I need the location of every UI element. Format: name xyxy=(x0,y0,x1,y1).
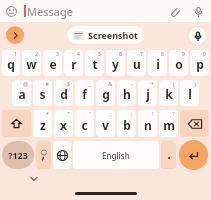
button[interactable]: Backspace xyxy=(180,110,209,137)
button[interactable]: Hide keyboard xyxy=(28,173,40,185)
staticText: 4 xyxy=(77,51,80,58)
staticText: z xyxy=(40,117,46,133)
button[interactable]: Voice input xyxy=(191,4,206,19)
button[interactable]: Period xyxy=(161,141,176,169)
button[interactable]: Show toolbar xyxy=(6,26,24,44)
button[interactable]: # xyxy=(33,80,52,106)
button[interactable]: " xyxy=(54,110,73,137)
staticText: ) xyxy=(194,81,196,88)
staticText: p xyxy=(196,56,204,72)
staticText: ! xyxy=(152,111,154,118)
button[interactable]: 0 xyxy=(190,50,209,76)
staticText: 2 xyxy=(35,51,38,58)
staticText: 7 xyxy=(140,51,143,58)
button[interactable]: English xyxy=(73,141,159,169)
button[interactable]: - xyxy=(117,80,136,106)
button[interactable]: ?123 xyxy=(2,141,34,169)
staticText: u xyxy=(133,56,141,72)
button[interactable]: 5 xyxy=(85,50,104,76)
staticText: @ xyxy=(23,81,28,88)
staticText: 0 xyxy=(203,51,206,58)
staticText: f xyxy=(82,86,87,102)
staticText: l xyxy=(188,86,192,102)
staticText: 5 xyxy=(98,51,101,58)
staticText: 9 xyxy=(182,51,185,58)
staticText: Message xyxy=(27,4,73,19)
button[interactable]: 1 xyxy=(2,50,20,76)
staticText: a xyxy=(18,86,26,102)
staticText: & xyxy=(108,81,112,88)
staticText: t xyxy=(92,56,98,72)
staticText: : xyxy=(110,111,112,118)
button[interactable]: Shift xyxy=(2,110,31,137)
button[interactable]: ; xyxy=(117,110,136,137)
staticText: n xyxy=(144,117,152,133)
staticText: h xyxy=(123,86,131,102)
staticText: - xyxy=(131,81,133,88)
button[interactable]: 8 xyxy=(148,50,167,76)
button[interactable]: Emoji xyxy=(5,5,18,18)
button[interactable]: ' xyxy=(75,110,94,137)
button[interactable]: 9 xyxy=(169,50,188,76)
staticText: 8 xyxy=(161,51,164,58)
button[interactable]: : xyxy=(96,110,115,137)
staticText: y xyxy=(112,56,119,72)
button[interactable]: 2 xyxy=(22,50,41,76)
staticText: r xyxy=(71,56,77,72)
staticText: s xyxy=(39,86,46,102)
staticText: $ xyxy=(67,81,70,88)
button[interactable]: + xyxy=(138,80,157,106)
button[interactable]: & xyxy=(96,80,115,106)
button[interactable]: 6 xyxy=(106,50,125,76)
button[interactable]: * xyxy=(33,110,52,137)
staticText: # xyxy=(45,81,49,88)
button[interactable]: @ xyxy=(12,80,31,106)
staticText: 3 xyxy=(56,51,59,58)
button[interactable]: Change language xyxy=(53,141,71,169)
button[interactable]: $ xyxy=(54,80,73,106)
button[interactable]: ( xyxy=(159,80,178,106)
staticText: Screenshot xyxy=(88,29,138,41)
staticText: ? xyxy=(172,111,175,118)
staticText: d xyxy=(60,86,68,102)
staticText: w xyxy=(26,56,37,72)
staticText: 1 xyxy=(14,51,17,58)
button[interactable]: 3 xyxy=(43,50,62,76)
button[interactable]: Screenshot xyxy=(67,26,144,44)
staticText: _ xyxy=(88,81,91,88)
button[interactable]: Enter xyxy=(179,140,208,170)
staticText: m xyxy=(163,117,175,133)
staticText: ' xyxy=(89,111,91,118)
button[interactable]: _ xyxy=(75,80,94,106)
button[interactable]: 4 xyxy=(64,50,83,76)
staticText: * xyxy=(46,111,49,118)
staticText: 6 xyxy=(119,51,122,58)
staticText: ( xyxy=(173,81,175,88)
staticText: " xyxy=(67,111,70,118)
staticText: q xyxy=(7,56,15,72)
button[interactable]: 7 xyxy=(127,50,146,76)
staticText: ?123 xyxy=(8,149,28,161)
staticText: c xyxy=(81,117,88,133)
staticText: ; xyxy=(131,111,133,118)
staticText: o xyxy=(175,56,183,72)
button[interactable]: ! xyxy=(138,110,157,137)
button[interactable]: Voice typing xyxy=(189,27,206,44)
button[interactable]: Attach file xyxy=(167,4,182,19)
staticText: b xyxy=(123,117,131,133)
button[interactable]: Emoji and comma xyxy=(36,141,51,169)
staticText: j xyxy=(146,86,150,102)
button[interactable]: ? xyxy=(159,110,178,137)
staticText: + xyxy=(151,81,154,88)
staticText: English xyxy=(102,150,130,161)
button[interactable]: ) xyxy=(180,80,199,106)
staticText: i xyxy=(156,56,160,72)
staticText: g xyxy=(102,86,110,102)
staticText: e xyxy=(49,56,57,72)
staticText: k xyxy=(165,86,173,102)
staticText: v xyxy=(102,117,109,133)
staticText: x xyxy=(60,117,67,133)
